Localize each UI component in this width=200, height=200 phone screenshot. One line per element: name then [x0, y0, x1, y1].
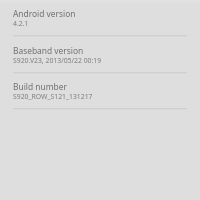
staticText: 4.2.1 [13, 19, 29, 28]
staticText: Build number [13, 81, 67, 92]
button[interactable]: Android version [0, 0, 200, 37]
button[interactable]: Build number [0, 73, 200, 110]
staticText: S920.V23, 2013/05/22 00:19 [13, 56, 102, 65]
staticText: Android version [13, 8, 76, 19]
staticText: S920_ROW_S121_131217 [13, 92, 93, 101]
button[interactable]: Baseband version [0, 37, 200, 74]
staticText: Baseband version [13, 45, 84, 56]
